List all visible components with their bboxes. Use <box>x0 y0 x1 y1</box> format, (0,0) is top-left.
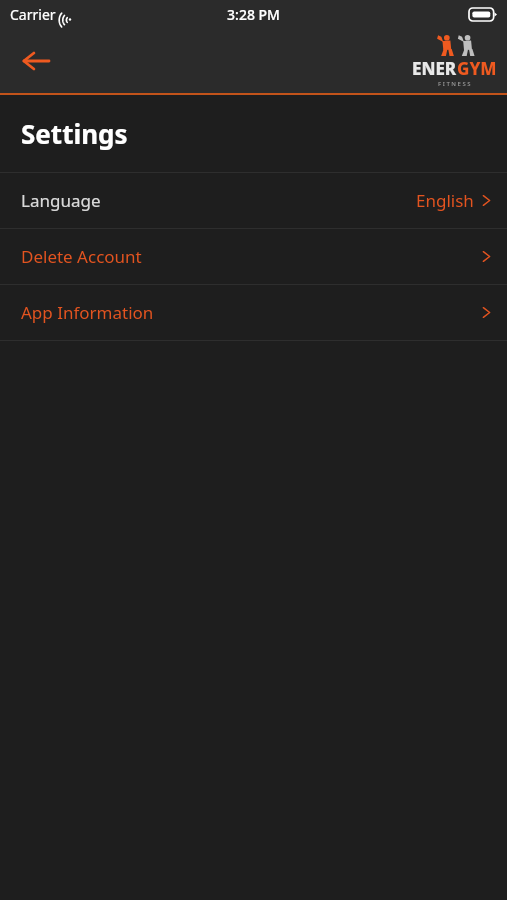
button[interactable]: Language <box>0 173 507 228</box>
staticText: ENER <box>412 57 457 80</box>
staticText: App Information <box>21 301 154 324</box>
button[interactable]: Back <box>12 37 60 85</box>
staticText: Delete Account <box>21 245 142 268</box>
staticText: Carrier <box>10 5 56 24</box>
button[interactable]: App Information <box>0 285 507 340</box>
staticText: GYM <box>457 57 497 80</box>
button[interactable]: Delete Account <box>0 229 507 284</box>
staticText: Settings <box>21 116 128 151</box>
staticText: 3:28 PM <box>227 5 280 24</box>
staticText: English <box>416 189 474 212</box>
staticText: Language <box>21 189 101 212</box>
staticText: F I T N E S S <box>438 80 471 88</box>
